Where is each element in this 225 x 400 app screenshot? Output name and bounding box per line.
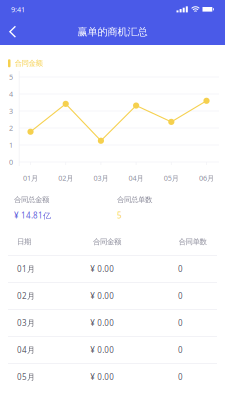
staticText: ¥ 14.81亿 (14, 210, 51, 221)
staticText: 05月 (17, 371, 35, 382)
staticText: 01月 (23, 173, 38, 183)
staticText: 3 (9, 106, 13, 116)
staticText: 合同金额 (14, 59, 42, 68)
staticText: 4 (9, 89, 13, 99)
staticText: ¥ 0.00 (90, 317, 114, 328)
staticText: 合同总单数 (117, 195, 152, 204)
staticText: ¥ 0.00 (90, 371, 114, 382)
staticText: 0 (178, 290, 183, 301)
staticText: 9:41 (11, 5, 25, 14)
staticText: ¥ 0.00 (90, 290, 114, 301)
staticText: 合同金额 (93, 237, 121, 246)
staticText: 03月 (17, 317, 35, 328)
staticText: 合同总金额 (14, 195, 49, 204)
staticText: 03月 (93, 173, 108, 183)
staticText: 06月 (199, 173, 214, 183)
staticText: 赢单的商机汇总 (77, 26, 147, 38)
staticText: 0 (178, 317, 183, 328)
staticText: 0 (178, 371, 183, 382)
staticText: 1 (9, 140, 13, 150)
staticText: 04月 (129, 173, 144, 183)
staticText: ¥ 0.00 (90, 263, 114, 274)
staticText: 合同单数 (178, 237, 206, 246)
staticText: 5 (117, 210, 122, 221)
staticText: 0 (9, 157, 13, 167)
staticText: 日期 (17, 237, 31, 246)
staticText: 5 (9, 72, 13, 82)
button[interactable]: Back (2, 19, 24, 45)
staticText: 05月 (164, 173, 179, 183)
staticText: 01月 (17, 263, 35, 274)
staticText: 02月 (17, 290, 35, 301)
staticText: ¥ 0.00 (90, 344, 114, 355)
staticText: 04月 (17, 344, 35, 355)
staticText: 0 (178, 344, 183, 355)
staticText: 0 (178, 263, 183, 274)
staticText: 02月 (58, 173, 73, 183)
staticText: 2 (9, 123, 13, 133)
